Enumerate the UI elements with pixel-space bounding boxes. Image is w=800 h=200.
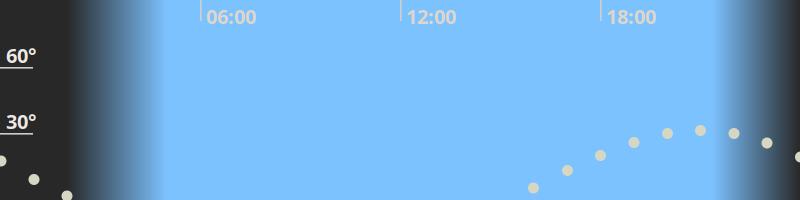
staticText: 12:00 bbox=[406, 3, 456, 30]
staticText: 06:00 bbox=[206, 3, 256, 30]
staticText: 18:00 bbox=[606, 3, 656, 30]
staticText: 30° bbox=[6, 108, 36, 135]
button[interactable]: Sun path and temperature chart, 06:00 to… bbox=[0, 0, 800, 200]
staticText: 60° bbox=[6, 42, 36, 69]
